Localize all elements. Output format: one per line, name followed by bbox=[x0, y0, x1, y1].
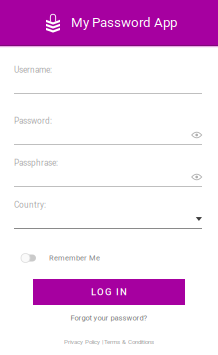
button[interactable]: Country: bbox=[14, 200, 202, 229]
staticText: LOG IN bbox=[91, 286, 127, 298]
staticText: Password: bbox=[14, 116, 52, 126]
button[interactable]: Remember Me bbox=[0, 250, 218, 266]
staticText: Remember Me bbox=[49, 254, 100, 262]
button[interactable]: Privacy Policy | Terms & Conditions bbox=[64, 336, 154, 348]
staticText: Privacy Policy | Terms & Conditions bbox=[64, 338, 154, 346]
staticText: Forgot your password? bbox=[70, 313, 147, 322]
staticText: Username: bbox=[14, 65, 52, 75]
button[interactable]: Forgot your password? bbox=[70, 311, 147, 325]
button[interactable]: Password: bbox=[14, 116, 202, 145]
button[interactable]: Username: bbox=[14, 65, 202, 94]
button[interactable]: LOG IN bbox=[33, 279, 185, 305]
staticText: Passphrase: bbox=[14, 158, 58, 168]
staticText: Country: bbox=[14, 200, 46, 210]
staticText: My Password App bbox=[71, 15, 177, 30]
button[interactable]: Passphrase: bbox=[14, 158, 202, 187]
